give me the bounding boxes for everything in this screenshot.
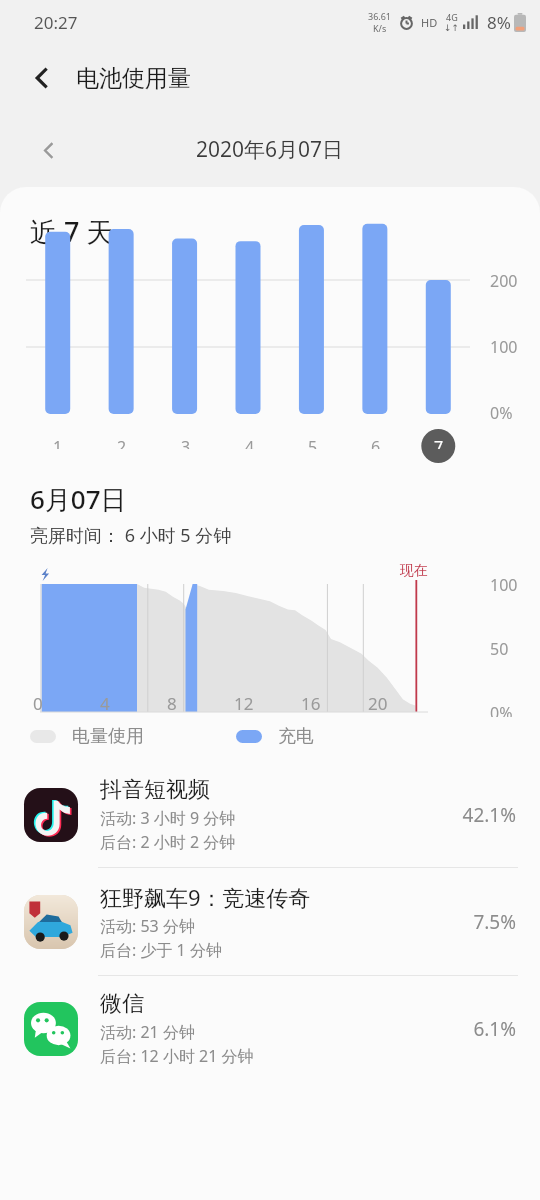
staticText: 36.61 [368, 10, 392, 22]
staticText: 7 [434, 436, 444, 449]
staticText: 6月07日 [30, 481, 127, 517]
staticText: 20 [368, 692, 388, 715]
button[interactable]: 微信 [0, 976, 540, 1081]
staticText: HD [421, 15, 438, 30]
staticText: 4G [446, 11, 458, 23]
staticText: 200 [490, 270, 518, 292]
button[interactable]: 抖音短视频 [0, 762, 540, 867]
staticText: 0 [33, 692, 43, 715]
staticText: 12 [234, 692, 254, 715]
staticText: 狂野飙车9：竞速传奇 [100, 882, 311, 912]
button[interactable]: 上一天 [26, 128, 70, 172]
staticText: K/s [373, 22, 387, 34]
staticText: 抖音短视频 [100, 776, 210, 804]
staticText: 4 [245, 436, 255, 449]
staticText: 现在 [400, 562, 428, 580]
staticText: 3 [181, 436, 191, 449]
staticText: 后台: 12 小时 21 分钟 [100, 1045, 254, 1067]
staticText: 2 [117, 436, 127, 449]
staticText: 后台: 2 小时 2 分钟 [100, 831, 236, 853]
staticText: 16 [301, 692, 321, 715]
staticText: 电池使用量 [76, 64, 191, 93]
button[interactable]: 返回 [18, 54, 66, 102]
staticText: ↓↑ [444, 23, 460, 33]
staticText: 100 [490, 574, 518, 596]
staticText: 微信 [100, 990, 144, 1018]
staticText: 50 [490, 638, 509, 660]
staticText: 后台: 少于 1 分钟 [100, 939, 222, 961]
staticText: 活动: 21 分钟 [100, 1021, 195, 1043]
staticText: 0% [490, 702, 513, 717]
staticText: 42.1% [462, 802, 516, 828]
staticText: 4 [100, 692, 110, 715]
staticText: 1 [53, 436, 63, 449]
staticText: 8% [487, 11, 511, 34]
staticText: 近 7 天 [30, 213, 114, 250]
staticText: 电量使用 [72, 725, 144, 748]
staticText: 7.5% [473, 909, 516, 935]
staticText: 2020年6月07日 [196, 135, 344, 164]
staticText: 20:27 [34, 11, 78, 34]
staticText: 亮屏时间： 6 小时 5 分钟 [30, 523, 232, 548]
button[interactable]: 狂野飙车9：竞速传奇 [0, 868, 540, 975]
staticText: 5 [308, 436, 318, 449]
staticText: 6.1% [473, 1016, 516, 1042]
staticText: 6 [371, 436, 381, 449]
staticText: 100 [490, 336, 518, 358]
staticText: 充电 [278, 725, 314, 748]
staticText: 活动: 3 小时 9 分钟 [100, 807, 236, 829]
staticText: 8 [167, 692, 177, 715]
staticText: 0% [490, 402, 513, 424]
staticText: 活动: 53 分钟 [100, 915, 195, 937]
